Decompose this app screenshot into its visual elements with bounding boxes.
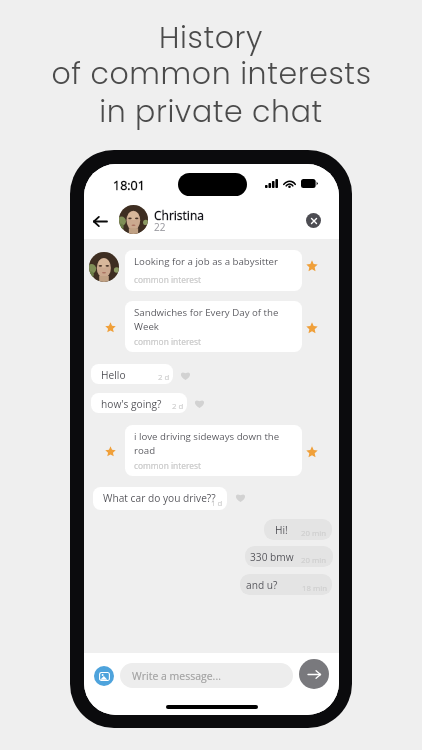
staticText: common interest bbox=[134, 336, 202, 347]
button[interactable]: Like bbox=[180, 371, 191, 380]
button[interactable]: Favorite bbox=[306, 322, 318, 334]
button[interactable]: Send bbox=[299, 659, 329, 689]
staticText: common interest bbox=[134, 460, 202, 471]
staticText: Hello bbox=[101, 368, 126, 382]
button[interactable]: Favorite bbox=[306, 446, 318, 458]
staticText: History bbox=[159, 17, 263, 59]
button[interactable]: and u? bbox=[240, 574, 332, 595]
button[interactable]: Close bbox=[306, 213, 321, 228]
button[interactable]: Favorite bbox=[105, 322, 116, 333]
button[interactable]: Hello bbox=[91, 364, 173, 384]
staticText: in private chat bbox=[99, 91, 323, 133]
button[interactable]: Like bbox=[194, 399, 205, 408]
button[interactable]: Hi! bbox=[264, 519, 332, 540]
button[interactable]: how's going? bbox=[91, 393, 187, 413]
staticText: 22 bbox=[154, 220, 166, 234]
staticText: Hi! bbox=[275, 523, 288, 537]
staticText: Sandwiches for Every Day of the Week bbox=[134, 306, 294, 333]
staticText: common interest bbox=[134, 274, 202, 285]
button[interactable]: Attach image bbox=[94, 666, 114, 686]
staticText: 18:01 bbox=[113, 177, 145, 194]
staticText: What car do you drive?? bbox=[103, 491, 216, 505]
button[interactable]: 330 bmw bbox=[245, 546, 333, 567]
staticText: 2 d bbox=[158, 372, 170, 383]
staticText: 1 d bbox=[211, 498, 223, 509]
staticText: 18 min bbox=[302, 583, 327, 594]
button[interactable]: What car do you drive?? bbox=[93, 487, 227, 510]
button[interactable]: Sandwiches for Every Day of the Week bbox=[125, 301, 302, 352]
staticText: 2 d bbox=[172, 401, 184, 412]
button[interactable]: Looking for a job as a babysitter bbox=[125, 250, 302, 291]
staticText: of common interests bbox=[51, 53, 372, 95]
button[interactable]: Back bbox=[90, 211, 110, 231]
staticText: i love driving sideways down the road bbox=[134, 430, 294, 457]
staticText: Looking for a job as a babysitter bbox=[134, 255, 279, 268]
staticText: Christina bbox=[154, 207, 204, 223]
button[interactable]: Write a message... bbox=[120, 663, 293, 688]
staticText: how's going? bbox=[101, 397, 162, 411]
button[interactable]: Favorite bbox=[105, 446, 116, 457]
staticText: 330 bmw bbox=[250, 550, 294, 564]
staticText: 20 min bbox=[301, 555, 326, 566]
button[interactable]: Like bbox=[235, 493, 246, 502]
staticText: Write a message... bbox=[132, 669, 221, 683]
staticText: 20 min bbox=[301, 528, 326, 539]
button[interactable]: i love driving sideways down the road bbox=[125, 425, 302, 476]
button[interactable]: Favorite bbox=[306, 260, 318, 272]
staticText: and u? bbox=[246, 578, 278, 592]
